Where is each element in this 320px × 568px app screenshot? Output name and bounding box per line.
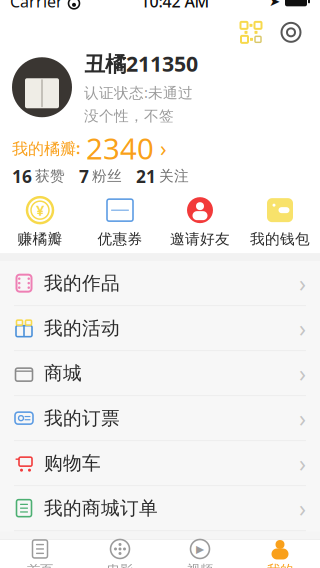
- staticText: ›: [299, 448, 306, 478]
- button[interactable]: 我的商城订单: [0, 486, 320, 531]
- staticText: 16: [12, 165, 32, 188]
- staticText: 认证状态:未通过: [84, 83, 193, 102]
- staticText: 没个性，不签: [84, 107, 174, 125]
- button[interactable]: 邀请好友: [160, 191, 240, 253]
- staticText: 我的作品: [44, 272, 120, 295]
- button[interactable]: 商城: [0, 351, 320, 396]
- staticText: ›: [299, 403, 306, 433]
- staticText: 赚橘瓣: [17, 230, 62, 248]
- staticText: ›: [160, 134, 167, 162]
- button[interactable]: 设置: [274, 17, 308, 47]
- button[interactable]: ¥: [0, 191, 80, 253]
- staticText: ›: [299, 313, 306, 343]
- staticText: 优惠券: [97, 230, 142, 248]
- staticText: 电影: [107, 562, 133, 568]
- staticText: ›: [299, 493, 306, 523]
- button[interactable]: 我的橘瓣:: [0, 133, 320, 163]
- staticText: 21: [136, 165, 156, 188]
- staticText: 获赞: [35, 167, 65, 185]
- button[interactable]: 我的: [240, 540, 320, 568]
- button[interactable]: 我的活动: [0, 306, 320, 351]
- button[interactable]: 我的订票: [0, 396, 320, 441]
- staticText: 我的橘瓣:: [12, 137, 80, 159]
- button[interactable]: 我的作品: [0, 261, 320, 306]
- staticText: ➤: [269, 0, 280, 9]
- button[interactable]: 21: [136, 165, 189, 188]
- staticText: 视频: [187, 562, 213, 568]
- button[interactable]: 16: [12, 165, 65, 188]
- staticText: 邀请好友: [170, 230, 230, 248]
- staticText: Carrier: [10, 0, 63, 12]
- button[interactable]: 扫一扫: [234, 17, 268, 47]
- staticText: ▶: [196, 543, 204, 555]
- staticText: 商城: [44, 362, 82, 385]
- staticText: ›: [299, 358, 306, 388]
- button[interactable]: 电影: [80, 540, 160, 568]
- button[interactable]: 优惠券: [80, 191, 160, 253]
- staticText: 购物车: [44, 452, 101, 475]
- staticText: 丑橘211350: [84, 49, 198, 78]
- staticText: 我的钱包: [250, 230, 310, 248]
- staticText: 2340: [86, 129, 154, 168]
- staticText: ›: [299, 268, 306, 298]
- staticText: 粉丝: [92, 167, 122, 185]
- staticText: 我的商城订单: [44, 497, 158, 520]
- staticText: 首页: [27, 562, 53, 568]
- staticText: 我的订票: [44, 407, 120, 430]
- staticText: 关注: [159, 167, 189, 185]
- staticText: 7: [79, 165, 89, 188]
- staticText: 我的: [267, 562, 293, 568]
- staticText: 我的活动: [44, 317, 120, 340]
- button[interactable]: ▶: [160, 540, 240, 568]
- button[interactable]: 7: [79, 165, 122, 188]
- button[interactable]: 购物车: [0, 441, 320, 486]
- button[interactable]: 首页: [0, 540, 80, 568]
- button[interactable]: 头像: [12, 57, 72, 117]
- staticText: 10:42 AM: [140, 0, 209, 12]
- button[interactable]: 我的钱包: [240, 191, 320, 253]
- staticText: ¥: [36, 200, 44, 220]
